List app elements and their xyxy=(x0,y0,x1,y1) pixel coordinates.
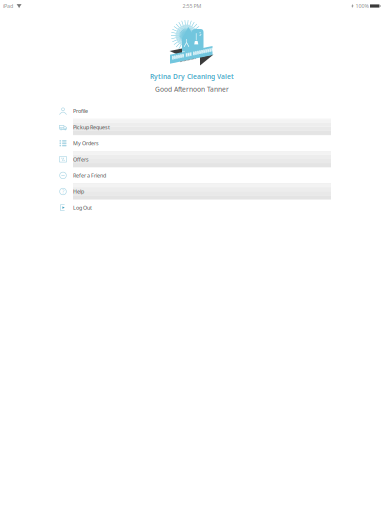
staticText: ? xyxy=(62,188,64,195)
button[interactable]: Refer a Friend xyxy=(0,168,384,183)
button[interactable]: Log Out xyxy=(0,200,384,215)
staticText: Profile xyxy=(73,107,88,115)
button[interactable]: Profile xyxy=(0,103,384,119)
staticText: Rytina Dry Cleaning Valet xyxy=(150,72,234,81)
button[interactable]: Offers xyxy=(0,151,384,167)
staticText: My Orders xyxy=(73,140,99,147)
staticText: Log Out xyxy=(73,204,92,211)
staticText: iPad xyxy=(3,2,13,10)
button[interactable]: ? xyxy=(0,184,384,199)
staticText: 2:55 PM xyxy=(182,2,201,10)
button[interactable]: My Orders xyxy=(0,135,384,151)
staticText: Pickup Request xyxy=(73,124,110,131)
staticText: Help xyxy=(73,188,84,195)
staticText: 100% xyxy=(355,2,368,10)
staticText: Offers xyxy=(73,156,89,163)
staticText: Good Afternoon Tanner xyxy=(155,85,229,94)
button[interactable]: Pickup Request xyxy=(0,119,384,135)
staticText: Refer a Friend xyxy=(73,172,106,179)
